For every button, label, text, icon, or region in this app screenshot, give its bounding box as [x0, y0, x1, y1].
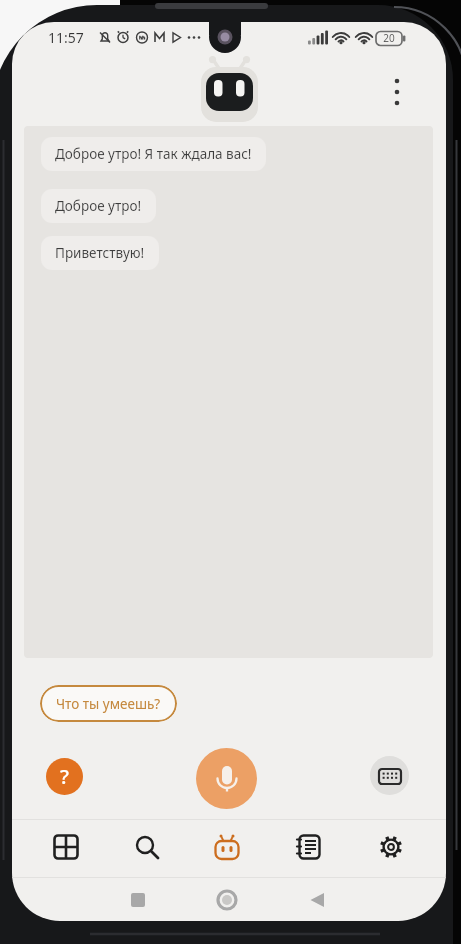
button[interactable] [367, 823, 415, 871]
button[interactable] [203, 823, 251, 871]
button[interactable] [285, 823, 333, 871]
staticText: 20 [376, 31, 402, 45]
staticText: ? [60, 763, 69, 790]
staticText: 11:57 [48, 28, 84, 47]
button[interactable] [115, 882, 161, 918]
button[interactable] [384, 72, 410, 112]
button[interactable] [294, 882, 340, 918]
button[interactable] [196, 748, 257, 809]
button[interactable] [204, 882, 250, 918]
staticText: Что ты умеешь? [56, 695, 161, 713]
button[interactable]: Что ты умеешь? [40, 685, 177, 722]
button[interactable]: ? [46, 758, 83, 795]
staticText: Доброе утро! Я так ждала вас! [55, 145, 252, 163]
button[interactable] [123, 823, 171, 871]
button[interactable] [42, 823, 90, 871]
staticText: Приветствую! [55, 244, 145, 262]
button[interactable] [370, 756, 409, 795]
staticText: Доброе утро! [55, 197, 142, 215]
